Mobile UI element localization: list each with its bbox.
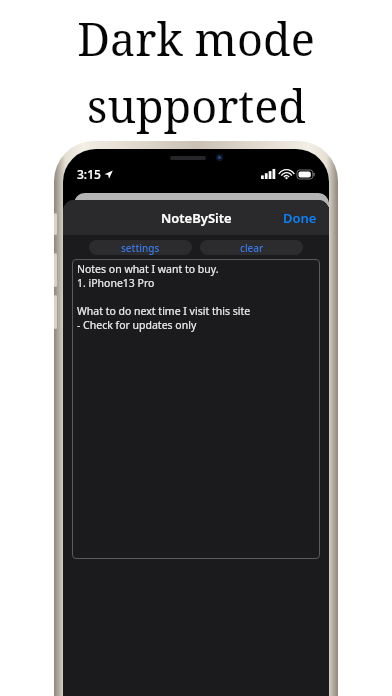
staticText: supported	[87, 75, 306, 136]
staticText: Notes on what I want to buy. 1. iPhone13…	[77, 262, 251, 332]
button[interactable]: clear	[200, 240, 303, 255]
button[interactable]: Done	[271, 201, 329, 235]
staticText: clear	[240, 241, 264, 255]
staticText: Dark mode	[77, 8, 315, 69]
staticText: NoteBySite	[161, 209, 232, 227]
button[interactable]: Notes on what I want to buy. 1. iPhone13…	[72, 259, 320, 559]
staticText: Done	[283, 209, 317, 227]
staticText: 3:15	[77, 166, 101, 182]
staticText: settings	[121, 241, 160, 255]
button[interactable]: settings	[89, 240, 192, 255]
